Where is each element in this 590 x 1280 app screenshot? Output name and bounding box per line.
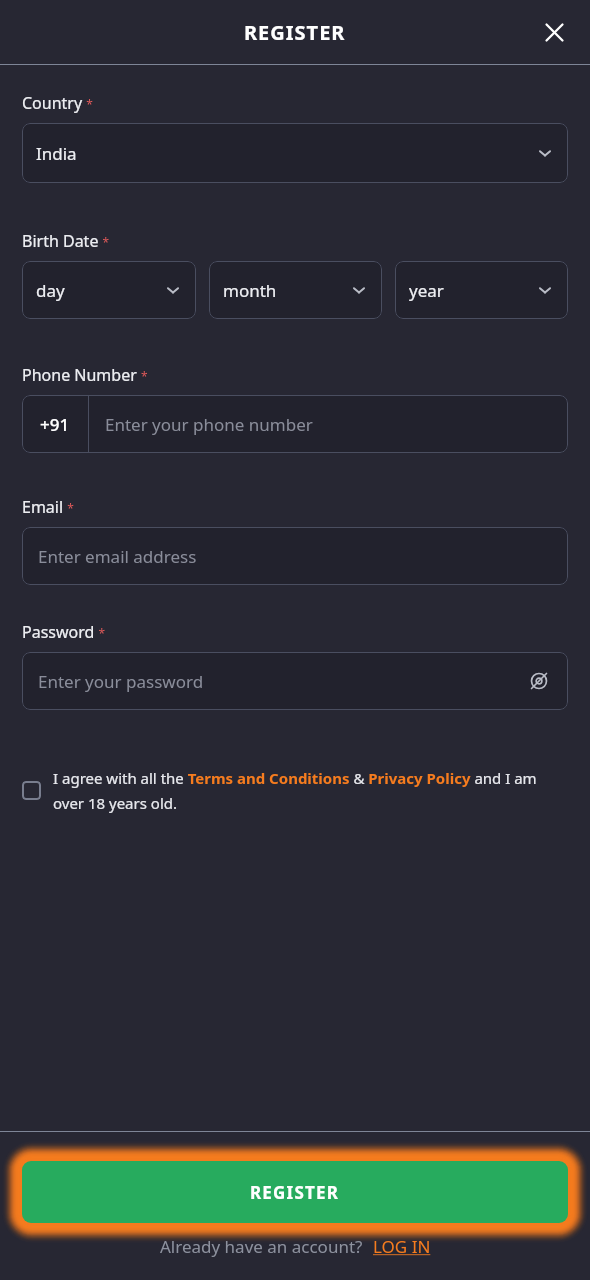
staticText: +91 xyxy=(40,413,70,436)
staticText: Phone Number * xyxy=(22,364,148,386)
staticText: Enter email address xyxy=(38,545,197,568)
button[interactable]: I agree with all the Terms and Condition… xyxy=(22,768,568,813)
button[interactable]: day xyxy=(22,261,196,319)
button[interactable]: Enter email address xyxy=(22,527,568,585)
button[interactable]: India xyxy=(22,123,568,183)
staticText: LOG IN xyxy=(373,1235,431,1258)
staticText: Already have an account? xyxy=(160,1235,363,1258)
staticText: month xyxy=(223,279,277,302)
button[interactable]: Close xyxy=(535,13,573,51)
staticText: India xyxy=(36,142,77,165)
staticText: Password * xyxy=(22,621,106,643)
button[interactable]: REGISTER xyxy=(22,1161,568,1223)
button[interactable]: +91 xyxy=(22,395,568,453)
staticText: Email * xyxy=(22,496,74,518)
staticText: year xyxy=(409,279,444,302)
staticText: day xyxy=(36,279,65,302)
staticText: REGISTER xyxy=(244,19,346,46)
staticText: Country * xyxy=(22,92,93,114)
button[interactable]: year xyxy=(395,261,568,319)
button[interactable]: Enter your password xyxy=(22,652,568,710)
staticText: I agree with all the Terms and Condition… xyxy=(53,768,568,813)
button[interactable]: month xyxy=(209,261,382,319)
button[interactable]: Show password xyxy=(524,666,554,696)
staticText: REGISTER xyxy=(250,1181,340,1204)
staticText: Enter your phone number xyxy=(105,413,313,436)
button[interactable]: LOG IN xyxy=(373,1235,431,1258)
staticText: Birth Date * xyxy=(22,230,110,252)
staticText: Enter your password xyxy=(38,670,204,693)
